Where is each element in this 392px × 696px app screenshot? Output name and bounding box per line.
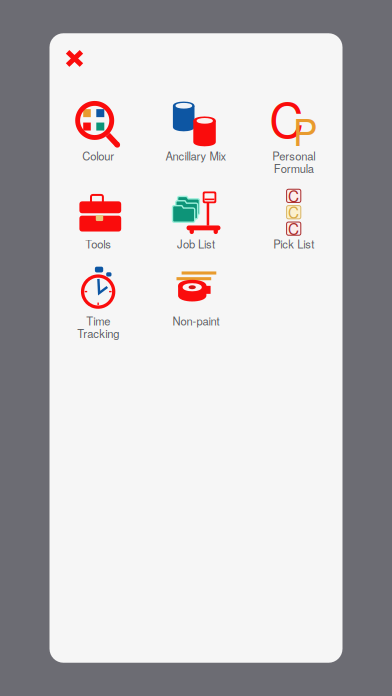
button[interactable]: Non-paint — [147, 266, 245, 346]
staticText: Colour — [82, 148, 114, 164]
staticText: Formula — [274, 160, 314, 176]
button[interactable]: Ancillary Mix — [147, 101, 245, 189]
staticText: C — [269, 83, 304, 152]
staticText: Personal — [272, 148, 315, 164]
staticText: Ancillary Mix — [165, 148, 226, 164]
staticText: C — [288, 217, 299, 239]
staticText: Time — [86, 313, 110, 329]
staticText: Tracking — [77, 325, 119, 341]
button[interactable]: Colour — [49, 101, 147, 189]
staticText: P — [293, 103, 318, 156]
button[interactable]: C — [245, 101, 342, 189]
button[interactable]: Close — [65, 49, 84, 68]
staticText: Non-paint — [172, 313, 219, 329]
staticText: Pick List — [273, 236, 314, 252]
staticText: C — [288, 201, 299, 223]
button[interactable]: Job List — [147, 189, 245, 266]
staticText: Job List — [177, 236, 215, 252]
button[interactable]: Tools — [49, 189, 147, 266]
button[interactable]: Time — [49, 266, 147, 346]
staticText: Tools — [85, 236, 111, 252]
staticText: C — [288, 185, 299, 207]
button[interactable]: C — [245, 189, 342, 266]
